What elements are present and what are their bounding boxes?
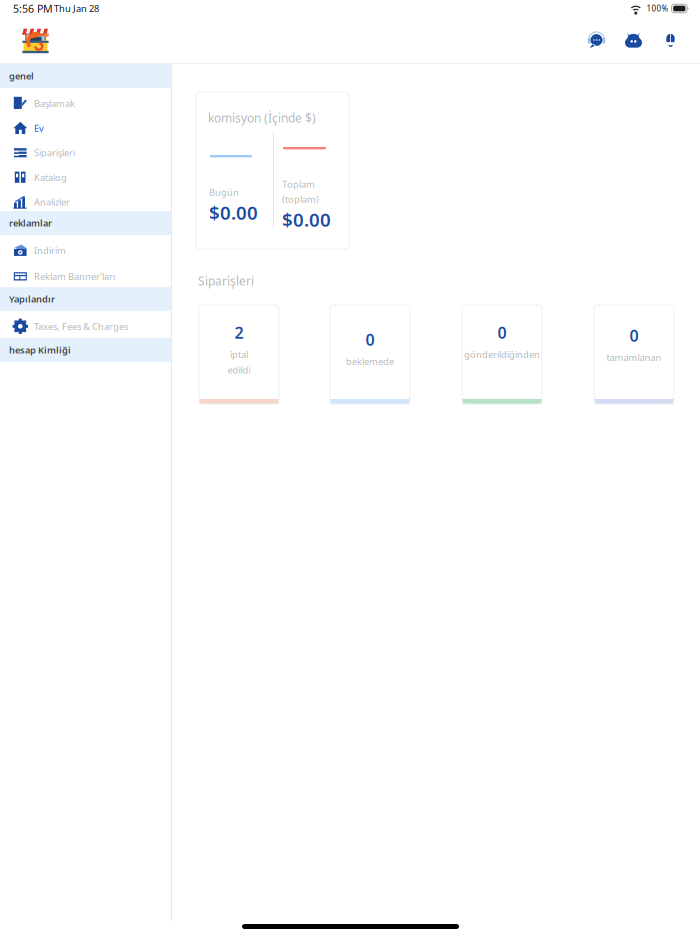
staticText: 0 [365,329,374,350]
staticText: Indirim [34,244,66,257]
staticText: tamamlanan [606,351,661,364]
staticText: genel [9,70,34,82]
staticText: Analizler [34,196,70,208]
staticText: Yapılandır [9,293,55,305]
button[interactable]: Reklam Banner'ları [0,261,171,287]
button[interactable]: Indirim [0,235,171,261]
staticText: $0.00 [209,200,258,225]
staticText: komisyon (İçinde $) [208,110,316,126]
staticText: 2 [234,322,243,343]
button[interactable]: Store home [0,24,51,55]
staticText: gönderildiğinden [464,348,540,361]
staticText: 0 [497,322,506,343]
staticText: Katalog [34,171,67,183]
button[interactable]: Taxes, Fees & Charges [0,311,171,338]
button[interactable]: Account [655,24,686,55]
staticText: 100% [647,3,669,14]
staticText: Siparişleri [198,273,254,289]
button[interactable]: Assistant [618,24,649,55]
staticText: Başlamak [34,97,75,110]
staticText: (toplam) [282,193,319,205]
staticText: Ev [34,122,44,134]
button[interactable]: Ev [0,113,171,137]
staticText: 5:56 PM [13,1,53,16]
button[interactable]: Analizler [0,186,171,211]
button[interactable]: 0 [462,305,542,404]
button[interactable]: 0 [594,305,674,404]
staticText: Toplam [282,178,315,190]
button[interactable]: Başlamak [0,88,171,113]
button[interactable]: Support chat [582,25,611,55]
staticText: Bugün [209,186,239,198]
staticText: Siparişleri [34,146,75,159]
staticText: hesap Kimliği [9,344,71,356]
staticText: $0.00 [282,207,331,232]
staticText: Thu Jan 28 [54,2,99,15]
staticText: 0 [629,325,638,346]
staticText: Reklam Banner'ları [34,270,115,283]
staticText: iptal [230,348,248,361]
staticText: reklamlar [9,217,52,229]
button[interactable]: 0 [330,305,410,404]
staticText: beklemede [346,355,394,368]
button[interactable]: Katalog [0,162,171,186]
staticText: edildi [227,364,250,376]
button[interactable]: 2 [199,305,279,404]
staticText: Taxes, Fees & Charges [34,320,128,333]
button[interactable]: Siparişleri [0,137,171,162]
